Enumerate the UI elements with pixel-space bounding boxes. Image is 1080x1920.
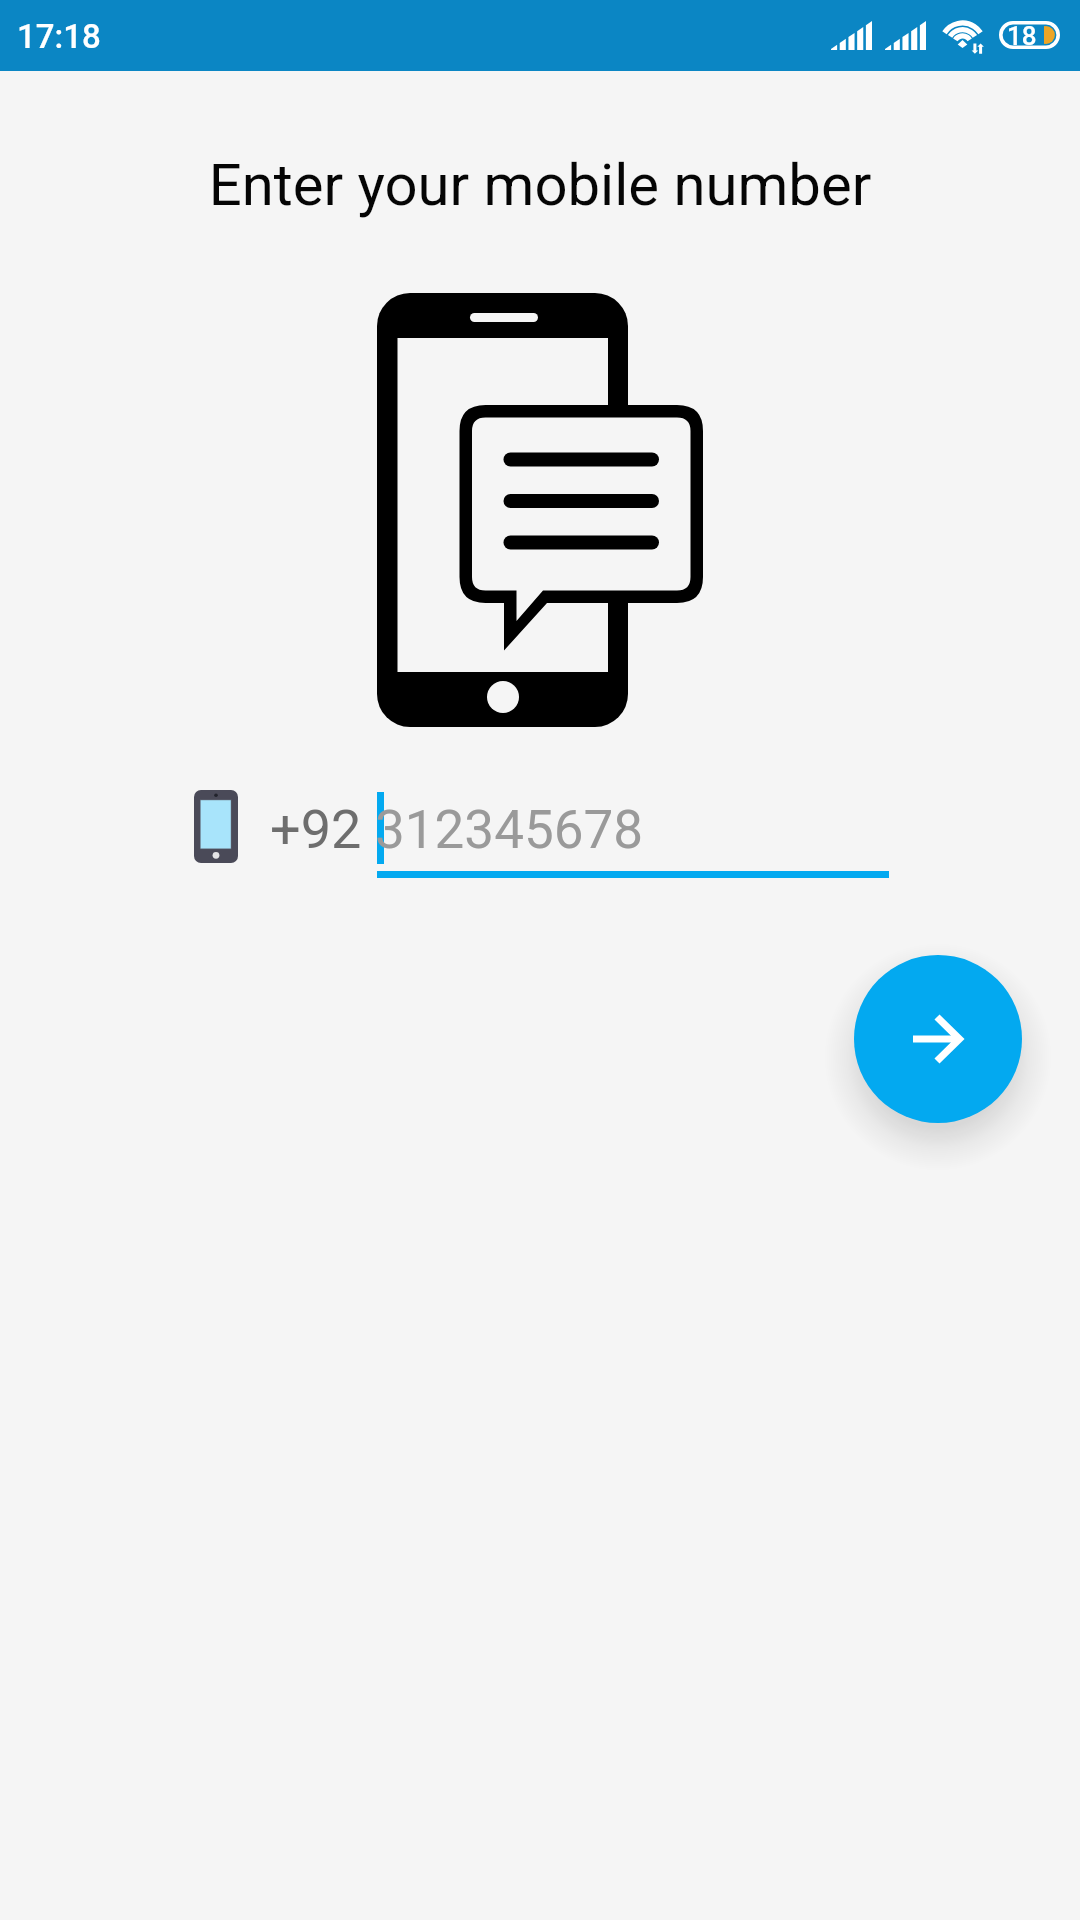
staticText: 17:18 <box>17 17 101 56</box>
button[interactable]: Next <box>854 955 1022 1123</box>
button[interactable]: +92 <box>190 780 900 895</box>
staticText: +92 <box>270 798 362 861</box>
staticText: 18 <box>1007 21 1037 49</box>
staticText: 312345678 <box>375 799 644 861</box>
staticText: Enter your mobile number <box>0 151 1080 219</box>
